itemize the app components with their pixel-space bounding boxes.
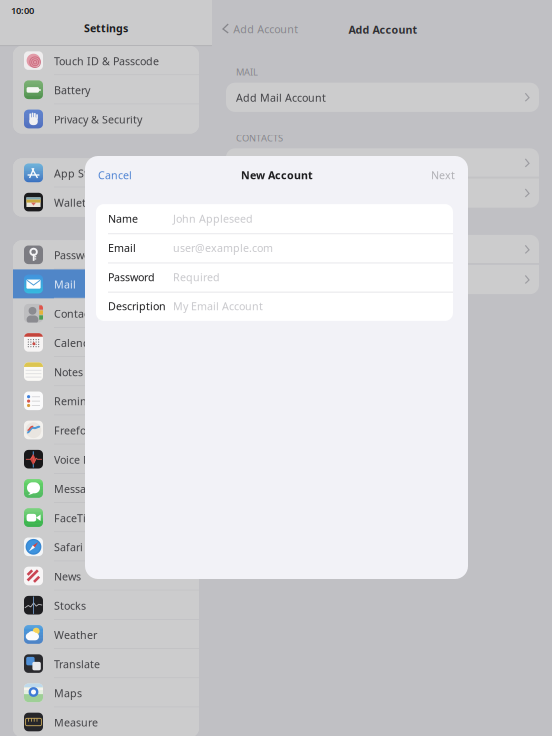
button[interactable]: Default Calendar [226, 265, 539, 294]
staticText: 10:00 [11, 4, 34, 17]
button[interactable]: Add Mail Account [226, 83, 539, 112]
staticText: My Email Account [173, 299, 263, 313]
staticText: MAIL [236, 66, 258, 78]
button[interactable]: Measure [13, 707, 199, 736]
button[interactable]: Maps [13, 678, 199, 707]
button[interactable]: Cancel [98, 168, 158, 182]
staticText: News [54, 569, 81, 583]
button[interactable]: Wallet [13, 187, 199, 217]
staticText: Mail [54, 277, 76, 291]
staticText: New Account [241, 168, 313, 182]
staticText: CALENDARS [236, 219, 289, 231]
staticText: user@example.com [173, 241, 273, 255]
button[interactable]: Calendar [13, 328, 199, 357]
button[interactable]: Safari [13, 532, 199, 561]
button[interactable]: Weather [13, 620, 199, 649]
button[interactable]: Default Account [226, 178, 539, 208]
staticText: Name [108, 211, 138, 226]
button[interactable]: Add Account [222, 22, 317, 36]
button[interactable]: Passwords [13, 240, 199, 269]
staticText: Add Account [348, 22, 417, 37]
staticText: Translate [54, 657, 100, 671]
staticText: Description [108, 299, 166, 313]
staticText: Privacy & Security [54, 112, 142, 126]
staticText: Safari [54, 540, 83, 554]
staticText: Touch ID & Passcode [54, 54, 159, 68]
staticText: Measure [54, 715, 98, 729]
staticText: CONTACTS [236, 132, 283, 144]
staticText: Cancel [98, 168, 132, 182]
staticText: Wallet [54, 195, 86, 210]
staticText: Next [431, 168, 455, 182]
staticText: Freeform [54, 423, 100, 437]
button[interactable]: Reminders [13, 386, 199, 415]
button[interactable]: Accounts [226, 148, 539, 177]
button[interactable]: Notes [13, 357, 199, 386]
button[interactable]: Touch ID & Passcode [13, 46, 199, 75]
staticText: Notes [54, 365, 83, 379]
button[interactable]: Stocks [13, 591, 199, 620]
staticText: John Appleseed [173, 211, 253, 226]
staticText: Maps [54, 686, 82, 700]
staticText: Contacts [54, 306, 98, 321]
staticText: Password [108, 270, 155, 284]
staticText: Messages [54, 482, 104, 496]
staticText: Email [108, 241, 136, 255]
button[interactable]: FaceTime [13, 503, 199, 532]
staticText: Battery [54, 83, 90, 97]
staticText: Reminders [54, 394, 109, 408]
staticText: Stocks [54, 598, 86, 613]
button[interactable]: Accounts [226, 235, 539, 264]
button[interactable]: Contacts [13, 299, 199, 328]
staticText: Voice Memos [54, 452, 120, 467]
button[interactable]: App Store [13, 158, 199, 187]
button[interactable]: Mail [13, 269, 199, 299]
button[interactable]: Battery [13, 75, 199, 104]
staticText: Passwords [54, 248, 106, 262]
button[interactable]: Freeform [13, 415, 199, 445]
button[interactable]: Voice Memos [13, 445, 199, 474]
staticText: App Store [54, 166, 104, 180]
staticText: Calendar [54, 336, 100, 350]
staticText: Weather [54, 628, 97, 642]
staticText: Accounts [236, 243, 282, 257]
staticText: FaceTime [54, 511, 102, 525]
button[interactable]: Messages [13, 474, 199, 503]
button[interactable]: News [13, 561, 199, 591]
button[interactable]: Translate [13, 649, 199, 678]
button[interactable]: Next [395, 168, 455, 182]
staticText: Add Account [233, 22, 298, 36]
button[interactable]: Privacy & Security [13, 104, 199, 134]
staticText: Settings [84, 21, 128, 35]
staticText: Add Mail Account [236, 91, 326, 105]
staticText: Required [173, 270, 220, 284]
